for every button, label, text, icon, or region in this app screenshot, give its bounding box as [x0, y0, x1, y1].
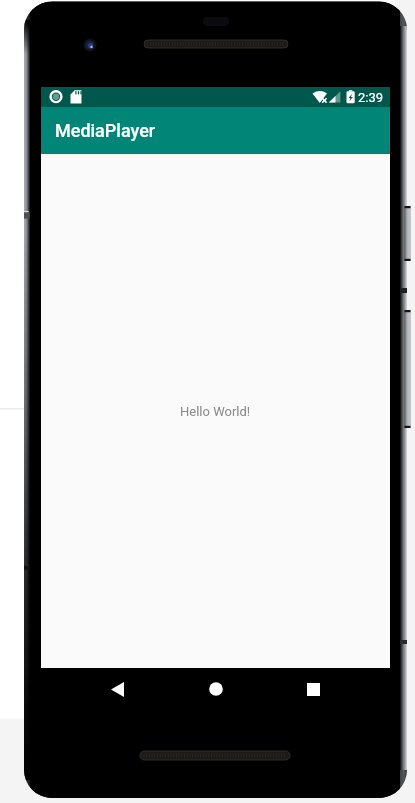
- staticText: MediaPlayer: [55, 120, 156, 141]
- staticText: 2:39: [358, 90, 384, 105]
- staticText: Hello World!: [180, 404, 251, 419]
- button[interactable]: Back: [89, 674, 146, 704]
- button[interactable]: Recent apps: [285, 674, 342, 704]
- button[interactable]: Home: [187, 674, 244, 704]
